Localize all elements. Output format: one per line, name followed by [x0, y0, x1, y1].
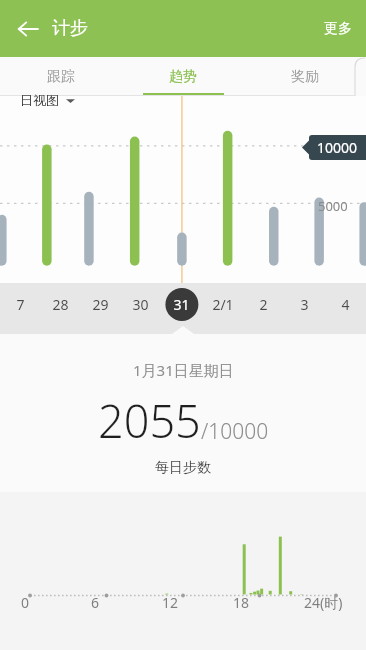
- button[interactable]: 日视图: [20, 92, 75, 108]
- staticText: 2: [259, 295, 268, 314]
- staticText: 跟踪: [47, 68, 75, 86]
- button[interactable]: 跟踪: [0, 57, 122, 96]
- staticText: 4: [341, 295, 350, 314]
- staticText: 0: [21, 593, 30, 612]
- staticText: 2/1: [212, 295, 234, 314]
- button[interactable]: Back: [6, 7, 50, 51]
- staticText: 10000: [317, 138, 358, 157]
- staticText: 每日步数: [155, 459, 211, 477]
- staticText: 5000: [318, 197, 348, 215]
- staticText: 趋势: [169, 68, 197, 86]
- button[interactable]: 趋势: [122, 57, 244, 96]
- staticText: 更多: [324, 20, 352, 38]
- button[interactable]: 更多: [310, 10, 366, 48]
- staticText: 18: [233, 593, 250, 612]
- staticText: 2055: [98, 390, 201, 451]
- staticText: 12: [162, 593, 179, 612]
- staticText: /10000: [201, 417, 269, 446]
- staticText: 29: [92, 295, 109, 314]
- staticText: 奖励: [291, 68, 319, 86]
- staticText: 7: [16, 295, 25, 314]
- staticText: 30: [132, 295, 149, 314]
- button[interactable]: 2/1: [202, 283, 243, 334]
- button[interactable]: 3: [284, 283, 325, 334]
- staticText: 3: [300, 295, 309, 314]
- button[interactable]: 30: [120, 283, 161, 334]
- staticText: 计步: [52, 17, 88, 40]
- staticText: 24(时): [304, 593, 343, 612]
- staticText: 31: [173, 295, 190, 314]
- staticText: 1月31日星期日: [133, 360, 234, 380]
- button[interactable]: 2: [243, 283, 284, 334]
- staticText: 28: [52, 295, 69, 314]
- button[interactable]: 7: [0, 283, 40, 334]
- button[interactable]: 31: [161, 283, 202, 334]
- button[interactable]: 28: [40, 283, 80, 334]
- button[interactable]: 奖励: [244, 57, 366, 96]
- staticText: 日视图: [20, 92, 59, 108]
- button[interactable]: 4: [325, 283, 366, 334]
- button[interactable]: 29: [80, 283, 120, 334]
- staticText: 6: [91, 593, 100, 612]
